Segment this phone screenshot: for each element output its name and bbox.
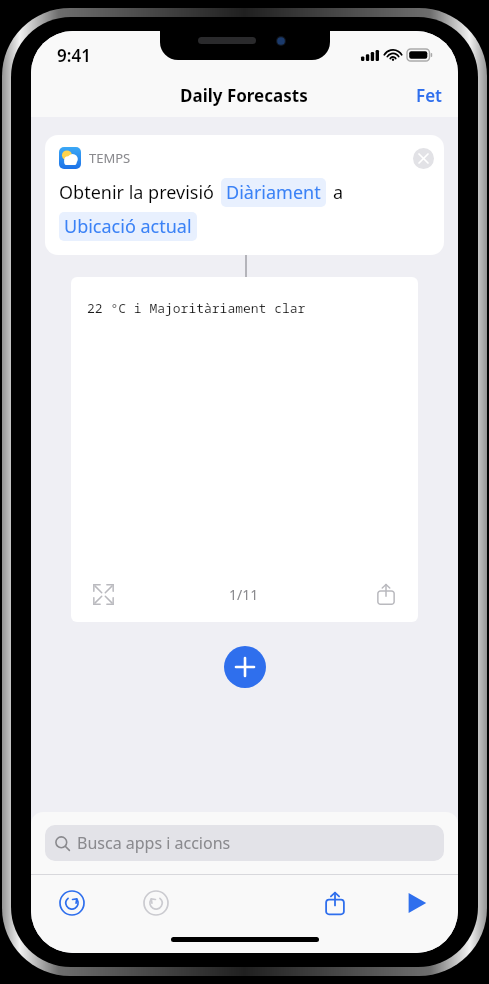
button[interactable]: Remove action	[413, 148, 434, 169]
staticText: Daily Forecasts	[180, 84, 308, 107]
staticText: 9:41	[57, 44, 91, 67]
button[interactable]: TEMPS	[45, 135, 444, 255]
button[interactable]: Add action	[224, 646, 266, 688]
button[interactable]: Ubicació actual	[59, 212, 197, 241]
staticText: Diàriament	[226, 180, 321, 205]
staticText: 22 °C i Majoritàriament clar	[87, 299, 306, 317]
button[interactable]: Redo	[137, 884, 175, 922]
button[interactable]: Undo	[53, 884, 91, 922]
button[interactable]: Run shortcut	[398, 884, 436, 922]
staticText: TEMPS	[89, 149, 131, 167]
button[interactable]: Share result	[370, 578, 402, 610]
button[interactable]: Fet	[400, 73, 458, 117]
button[interactable]: 22 °C i Majoritàriament clar	[71, 277, 418, 622]
button[interactable]: Busca apps i accions	[45, 825, 444, 861]
staticText: 1/11	[229, 585, 259, 604]
staticText: Obtenir la previsió	[59, 180, 214, 205]
staticText: a	[333, 180, 344, 205]
button[interactable]: Expand	[87, 578, 119, 610]
button[interactable]: Diàriament	[221, 178, 326, 207]
staticText: Busca apps i accions	[77, 832, 231, 854]
button[interactable]: Share	[316, 884, 354, 922]
staticText: Fet	[416, 84, 442, 107]
staticText: Ubicació actual	[64, 214, 192, 239]
